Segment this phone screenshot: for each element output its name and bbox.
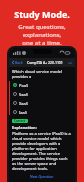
button[interactable]: SaaS [13, 90, 72, 98]
button[interactable]: IaaS [13, 108, 72, 116]
staticText: Explanation: [12, 125, 37, 130]
staticText: IaaS [19, 110, 28, 115]
staticText: Study Mode. [4, 8, 80, 20]
staticText: Great questions, explanations, one at a … [4, 23, 80, 47]
staticText: Which cloud service model provides a pla… [12, 69, 72, 79]
button[interactable]: More options [68, 61, 72, 65]
staticText: SaaS [19, 92, 28, 97]
staticText: PaaS [19, 83, 29, 88]
staticText: Next Question [30, 174, 54, 179]
staticText: Platform as a service (PaaS) is a cloud … [12, 131, 72, 171]
button[interactable]: Next Question [12, 174, 72, 179]
button[interactable]: PaaS [13, 81, 72, 89]
staticText: XaaS [19, 101, 29, 106]
button[interactable]: XaaS [13, 99, 72, 107]
staticText: Back [15, 60, 23, 65]
staticText: Correct [14, 119, 26, 123]
staticText: CompTIA A+ 220-1101 [27, 60, 63, 65]
button[interactable]: Back [12, 60, 23, 65]
